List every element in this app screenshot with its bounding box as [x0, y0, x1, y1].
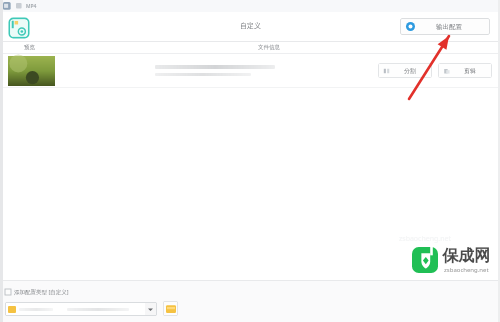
button[interactable]: 分割 — [378, 63, 432, 78]
staticText: 自定义 — [240, 21, 261, 30]
staticText: zsbaocheng.net — [399, 234, 452, 244]
button[interactable]: 输出配置 — [400, 18, 490, 35]
staticText: 添加配置类型 [自定义] — [14, 288, 69, 296]
staticText: MP4 — [26, 3, 37, 10]
button[interactable]: App logo — [8, 17, 30, 39]
button[interactable]: 分割 — [0, 54, 500, 87]
button[interactable]: Dropdown — [5, 302, 157, 316]
staticText: zsbaocheng.net — [444, 266, 489, 274]
staticText: 文件信息 — [258, 44, 280, 51]
button[interactable]: 添加配置类型 [自定义] — [5, 286, 69, 297]
staticText: 预览 — [24, 44, 35, 51]
staticText: 剪辑 — [464, 67, 476, 75]
button[interactable]: 剪辑 — [438, 63, 492, 78]
button[interactable]: Dropdown — [145, 303, 156, 315]
staticText: 保成网 — [442, 246, 490, 266]
staticText: 输出配置 — [436, 23, 462, 31]
staticText: 分割 — [404, 67, 416, 75]
button[interactable]: Browse folder — [163, 301, 178, 316]
